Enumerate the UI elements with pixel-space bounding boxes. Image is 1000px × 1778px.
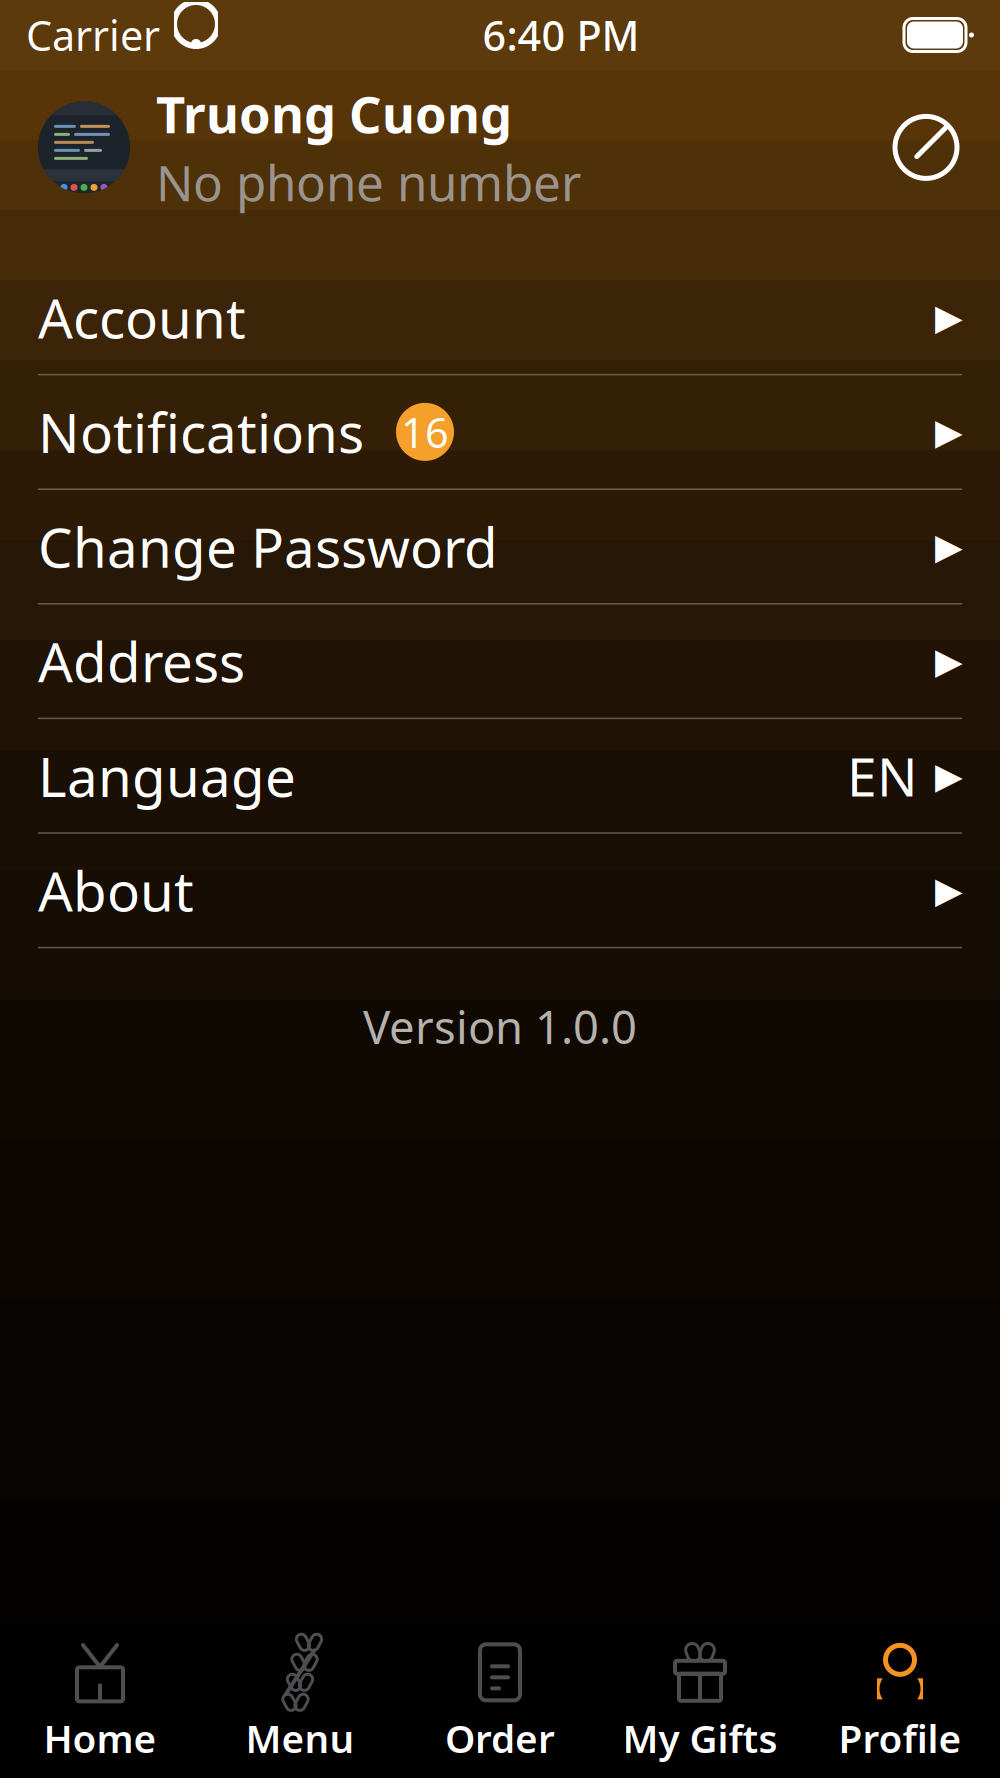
staticText: Truong Cuong xyxy=(156,80,512,147)
staticText: ▶ xyxy=(935,297,963,338)
staticText: Language xyxy=(38,739,296,812)
staticText: No phone number xyxy=(156,149,581,215)
button[interactable]: Order xyxy=(400,1630,600,1778)
button[interactable]: Language xyxy=(0,719,1000,832)
button[interactable]: Home xyxy=(0,1630,200,1778)
staticText: ▶ xyxy=(935,526,963,567)
button[interactable]: Change Password xyxy=(0,490,1000,603)
staticText: About xyxy=(38,854,194,927)
staticText: Notifications xyxy=(38,396,364,468)
button[interactable]: Profile xyxy=(800,1630,1000,1778)
staticText: 6:40 PM xyxy=(482,8,639,62)
staticText: ▶ xyxy=(935,755,963,796)
button[interactable]: Menu xyxy=(200,1630,400,1778)
staticText: Order xyxy=(445,1712,555,1764)
staticText: My Gifts xyxy=(622,1712,777,1764)
staticText: Carrier xyxy=(26,8,160,62)
staticText: Address xyxy=(38,625,245,697)
button[interactable]: About xyxy=(0,834,1000,947)
button[interactable]: Address xyxy=(0,605,1000,718)
button[interactable]: Notifications xyxy=(0,375,1000,488)
button[interactable]: Account xyxy=(0,261,1000,374)
staticText: 16 xyxy=(401,404,449,459)
staticText: Version 1.0.0 xyxy=(363,996,637,1057)
staticText: ▶ xyxy=(935,641,963,682)
staticText: Change Password xyxy=(38,510,498,583)
staticText: EN xyxy=(847,740,918,811)
staticText: Account xyxy=(38,281,246,354)
staticText: ▶ xyxy=(935,870,963,911)
staticText: Home xyxy=(43,1712,156,1764)
button[interactable]: My Gifts xyxy=(600,1630,800,1778)
staticText: Menu xyxy=(245,1712,354,1764)
staticText: Profile xyxy=(838,1712,961,1764)
button[interactable]: Edit profile xyxy=(880,101,972,193)
staticText: ▶ xyxy=(935,411,963,452)
